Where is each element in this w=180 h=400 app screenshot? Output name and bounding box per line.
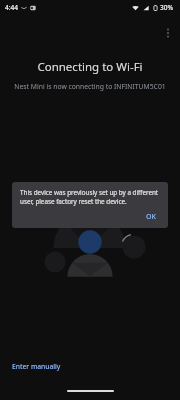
staticText: 30% [160, 3, 173, 12]
staticText: Enter manually [12, 362, 61, 371]
staticText: Connecting to Wi-Fi [0, 59, 180, 75]
staticText: This device was previously set up by a d… [20, 188, 167, 206]
button[interactable]: OK [141, 209, 161, 225]
button[interactable]: Enter manually [6, 358, 67, 375]
staticText: 4:44 [5, 3, 18, 12]
staticText: Nest Mini is now connecting to INFINITUM… [0, 82, 180, 91]
button[interactable]: More options [158, 23, 178, 43]
staticText: OK [146, 212, 156, 222]
